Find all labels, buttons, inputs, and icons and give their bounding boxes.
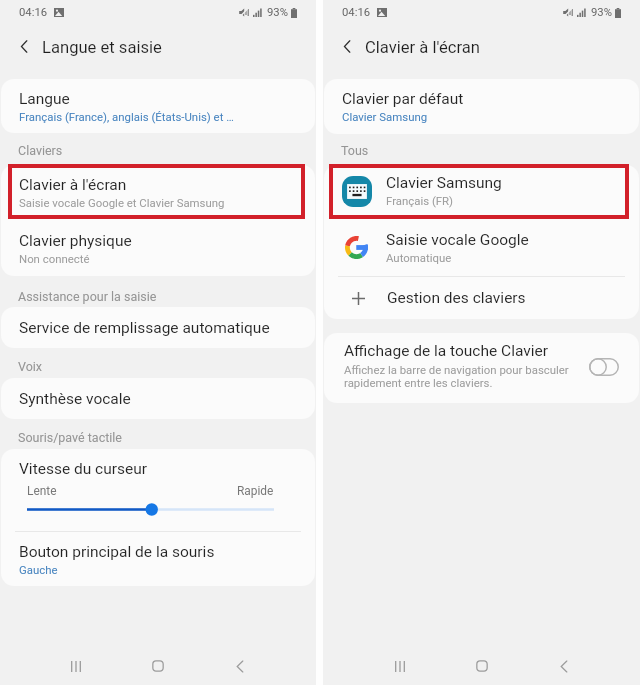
staticText: Saisie vocale Google et Clavier Samsung bbox=[19, 196, 225, 209]
staticText: Gestion des claviers bbox=[387, 289, 526, 307]
button[interactable]: Clavier par défaut bbox=[324, 79, 639, 134]
button[interactable]: Clavier Samsung bbox=[324, 165, 639, 219]
button[interactable]: Service de remplissage automatique bbox=[1, 307, 315, 348]
staticText: 04:16 bbox=[19, 6, 48, 19]
staticText: Affichez la barre de navigation pour bas… bbox=[344, 363, 569, 389]
staticText: Saisie vocale Google bbox=[386, 231, 529, 249]
staticText: Tous bbox=[341, 143, 369, 158]
button[interactable]: Clavier physique bbox=[1, 220, 315, 276]
staticText: Service de remplissage automatique bbox=[19, 319, 270, 337]
staticText: Clavier physique bbox=[19, 232, 132, 250]
staticText: Bouton principal de la souris bbox=[19, 543, 215, 561]
button[interactable]: Bouton principal de la souris bbox=[1, 532, 315, 586]
staticText: Claviers bbox=[18, 143, 63, 158]
staticText: Rapide bbox=[237, 484, 274, 498]
button[interactable]: Home bbox=[441, 643, 523, 685]
button[interactable]: Navigate up bbox=[323, 30, 365, 64]
button[interactable]: Vitesse du curseur bbox=[1, 449, 315, 531]
staticText: Clavier à l'écran bbox=[19, 176, 127, 194]
staticText: Assistance pour la saisie bbox=[18, 289, 157, 304]
staticText: Clavier Samsung bbox=[386, 174, 502, 192]
button[interactable]: Home bbox=[117, 643, 199, 685]
staticText: Souris/pavé tactile bbox=[18, 430, 122, 445]
staticText: Gauche bbox=[19, 563, 58, 576]
button[interactable]: Clavier à l'écran bbox=[1, 165, 315, 220]
staticText: Synthèse vocale bbox=[19, 390, 131, 408]
staticText: 93% bbox=[267, 6, 288, 19]
button[interactable]: Saisie vocale Google bbox=[324, 219, 639, 276]
staticText: Français (France), anglais (États-Unis) … bbox=[19, 110, 234, 123]
staticText: 93% bbox=[591, 6, 612, 19]
button[interactable]: Gestion des claviers bbox=[324, 277, 639, 319]
button[interactable]: Navigate up bbox=[0, 30, 42, 64]
staticText: Langue et saisie bbox=[42, 38, 162, 57]
staticText: 04:16 bbox=[342, 6, 371, 19]
button[interactable]: Back bbox=[199, 643, 281, 685]
staticText: Lente bbox=[27, 484, 57, 498]
button[interactable]: Langue bbox=[1, 79, 315, 133]
staticText: Voix bbox=[18, 359, 43, 374]
button[interactable]: Synthèse vocale bbox=[1, 378, 315, 419]
staticText: Vitesse du curseur bbox=[19, 460, 148, 478]
staticText: Automatique bbox=[386, 251, 452, 264]
staticText: Langue bbox=[19, 90, 70, 108]
button[interactable]: Recent apps bbox=[35, 643, 117, 685]
button[interactable]: Affichage de la touche Clavier bbox=[324, 333, 639, 403]
button[interactable]: Back bbox=[523, 643, 605, 685]
staticText: Non connecté bbox=[19, 252, 90, 265]
button[interactable]: Recent apps bbox=[358, 643, 441, 685]
staticText: Clavier à l'écran bbox=[365, 38, 480, 57]
staticText: Français (FR) bbox=[386, 194, 454, 207]
staticText: Clavier par défaut bbox=[342, 90, 464, 108]
staticText: Clavier Samsung bbox=[342, 110, 428, 123]
staticText: Affichage de la touche Clavier bbox=[344, 342, 548, 360]
